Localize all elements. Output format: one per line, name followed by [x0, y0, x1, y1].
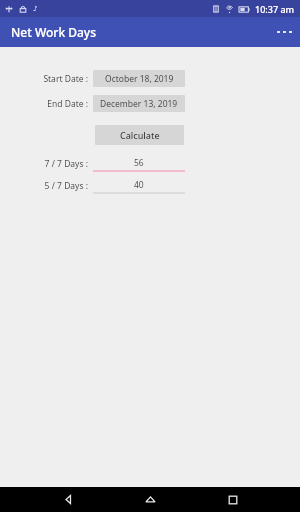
- staticText: ♪: [33, 5, 38, 13]
- button[interactable]: More options: [272, 20, 296, 44]
- staticText: December 13, 2019: [100, 98, 178, 110]
- button[interactable]: Home: [135, 487, 165, 512]
- staticText: 5 / 7 Days :: [44, 180, 88, 192]
- button[interactable]: 40: [93, 177, 185, 194]
- staticText: 40: [134, 179, 144, 191]
- staticText: End Date :: [47, 98, 88, 110]
- staticText: 56: [134, 157, 144, 169]
- button[interactable]: Calculate: [95, 125, 184, 145]
- staticText: October 18, 2019: [105, 73, 174, 85]
- button[interactable]: Back: [53, 487, 83, 512]
- button[interactable]: December 13, 2019: [93, 95, 185, 112]
- button[interactable]: 56: [93, 155, 185, 172]
- button[interactable]: Recent apps: [218, 487, 248, 512]
- button[interactable]: October 18, 2019: [93, 70, 185, 87]
- staticText: Start Date :: [43, 73, 88, 85]
- staticText: Net Work Days: [11, 24, 97, 40]
- staticText: 7 / 7 Days :: [44, 158, 88, 170]
- staticText: 10:37 am: [255, 3, 295, 15]
- staticText: Calculate: [120, 129, 160, 141]
